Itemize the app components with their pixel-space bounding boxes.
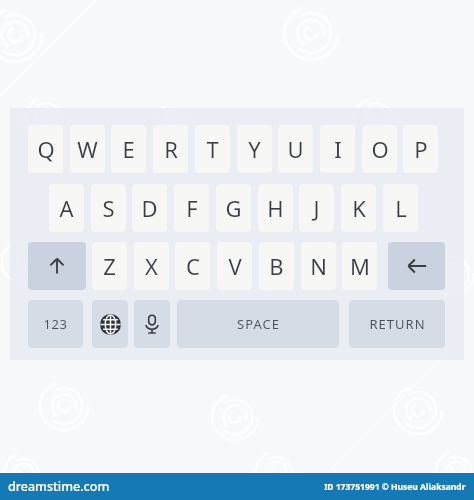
button[interactable]: E bbox=[111, 125, 146, 173]
staticText: E bbox=[122, 134, 135, 164]
button[interactable]: M bbox=[342, 242, 377, 290]
button[interactable]: B bbox=[259, 242, 294, 290]
button[interactable]: F bbox=[174, 184, 209, 232]
staticText: SPACE bbox=[237, 315, 280, 333]
staticText: D bbox=[141, 193, 158, 223]
button[interactable]: RETURN bbox=[349, 300, 445, 348]
button[interactable]: Change keyboard language bbox=[92, 300, 128, 348]
button[interactable]: I bbox=[320, 125, 355, 173]
button[interactable]: T bbox=[195, 125, 230, 173]
button[interactable]: X bbox=[134, 242, 169, 290]
staticText: F bbox=[186, 193, 198, 223]
button[interactable]: W bbox=[70, 125, 105, 173]
button[interactable]: Backspace bbox=[388, 242, 445, 290]
staticText: H bbox=[267, 193, 284, 223]
staticText: Y bbox=[248, 134, 261, 164]
staticText: V bbox=[228, 251, 242, 281]
button[interactable]: O bbox=[362, 125, 397, 173]
button[interactable]: Q bbox=[28, 125, 63, 173]
staticText: T bbox=[206, 134, 219, 164]
staticText: S bbox=[102, 193, 115, 223]
button[interactable]: R bbox=[153, 125, 188, 173]
staticText: K bbox=[352, 193, 366, 223]
button[interactable]: V bbox=[217, 242, 252, 290]
staticText: Z bbox=[103, 251, 116, 281]
staticText: X bbox=[145, 251, 158, 281]
button[interactable]: Y bbox=[237, 125, 272, 173]
button[interactable]: H bbox=[258, 184, 293, 232]
staticText: R bbox=[164, 134, 178, 164]
staticText: J bbox=[313, 193, 320, 223]
staticText: L bbox=[395, 193, 407, 223]
staticText: N bbox=[310, 251, 327, 281]
button[interactable]: 123 bbox=[28, 300, 83, 348]
staticText: O bbox=[371, 134, 389, 164]
staticText: A bbox=[59, 193, 74, 223]
staticText: ID 173751991 © Huseu Aliaksandr bbox=[324, 481, 466, 493]
staticText: G bbox=[225, 193, 242, 223]
button[interactable]: U bbox=[278, 125, 313, 173]
button[interactable]: A bbox=[49, 184, 84, 232]
button[interactable]: C bbox=[175, 242, 210, 290]
staticText: 123 bbox=[43, 315, 68, 333]
staticText: U bbox=[287, 134, 304, 164]
button[interactable]: G bbox=[216, 184, 251, 232]
staticText: M bbox=[350, 251, 370, 281]
button[interactable]: L bbox=[383, 184, 418, 232]
button[interactable]: K bbox=[341, 184, 376, 232]
staticText: P bbox=[414, 134, 428, 164]
button[interactable]: SPACE bbox=[177, 300, 339, 348]
button[interactable]: N bbox=[301, 242, 336, 290]
staticText: RETURN bbox=[369, 315, 426, 333]
button[interactable]: J bbox=[299, 184, 334, 232]
staticText: I bbox=[334, 134, 342, 164]
button[interactable]: Voice input bbox=[134, 300, 170, 348]
staticText: W bbox=[77, 134, 98, 164]
staticText: Q bbox=[37, 134, 55, 164]
button[interactable]: Z bbox=[92, 242, 127, 290]
button[interactable]: Shift bbox=[28, 242, 86, 290]
staticText: C bbox=[186, 251, 200, 281]
button[interactable]: P bbox=[403, 125, 438, 173]
staticText: B bbox=[269, 251, 284, 281]
button[interactable]: S bbox=[91, 184, 126, 232]
staticText: dreamstime.com bbox=[8, 478, 110, 495]
button[interactable]: D bbox=[132, 184, 167, 232]
